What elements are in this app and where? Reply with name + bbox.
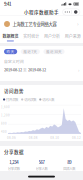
staticText: 数据概览: [2, 33, 18, 39]
staticText: 最近30天: [46, 49, 62, 54]
staticText: 访问人数: [42, 97, 54, 102]
button[interactable]: 89: [55, 159, 83, 171]
staticText: 89: [67, 159, 71, 165]
staticText: 用户分析: [44, 33, 60, 39]
button[interactable]: 实时统计: [21, 32, 42, 43]
staticText: 打开次数: [6, 97, 18, 102]
staticText: 回流人数: [63, 166, 75, 171]
button[interactable]: 昨天: [4, 49, 17, 54]
staticText: 2019-08-12: [4, 67, 22, 72]
staticText: 800: [1, 121, 7, 126]
staticText: 400: [1, 130, 7, 134]
staticText: 08-08: [29, 135, 38, 140]
button[interactable]: 567: [28, 159, 55, 171]
staticText: 小程序数据助手: [24, 9, 59, 15]
staticText: 用户来源: [65, 33, 81, 39]
staticText: 1,234: [9, 159, 18, 165]
staticText: 昨天: [7, 49, 15, 54]
staticText: 自定义时间: [4, 59, 24, 64]
staticText: 分享次数: [8, 166, 20, 171]
staticText: 至: [22, 67, 28, 72]
staticText: 实时统计: [23, 33, 39, 39]
staticText: 2019-08-12: [28, 67, 46, 72]
staticText: 上海数工艺专业网络大赛: [12, 21, 56, 27]
staticText: 08-12: [72, 135, 81, 140]
staticText: 最近7天: [23, 49, 37, 54]
button[interactable]: More options: [63, 9, 80, 15]
staticText: ›: [78, 66, 79, 73]
staticText: 567: [38, 159, 44, 165]
button[interactable]: 最近7天: [21, 49, 40, 54]
button[interactable]: 最近30天: [43, 49, 65, 54]
staticText: 分享数据: [4, 148, 24, 155]
staticText: 1,200: [1, 113, 10, 117]
staticText: 9:41: [4, 1, 11, 7]
button[interactable]: 用户分析: [41, 32, 62, 43]
staticText: 分享人数: [35, 166, 47, 171]
staticText: 1,600: [1, 105, 10, 109]
staticText: 08-06: [7, 135, 16, 140]
button[interactable]: 用户来源: [62, 32, 83, 43]
button[interactable]: 1,234: [0, 159, 28, 171]
button[interactable]: 数据概览: [0, 32, 21, 43]
staticText: 访问趋势: [4, 87, 24, 94]
staticText: 访问次数: [24, 97, 36, 102]
staticText: 08-10: [50, 135, 59, 140]
staticText: ›: [77, 20, 79, 28]
